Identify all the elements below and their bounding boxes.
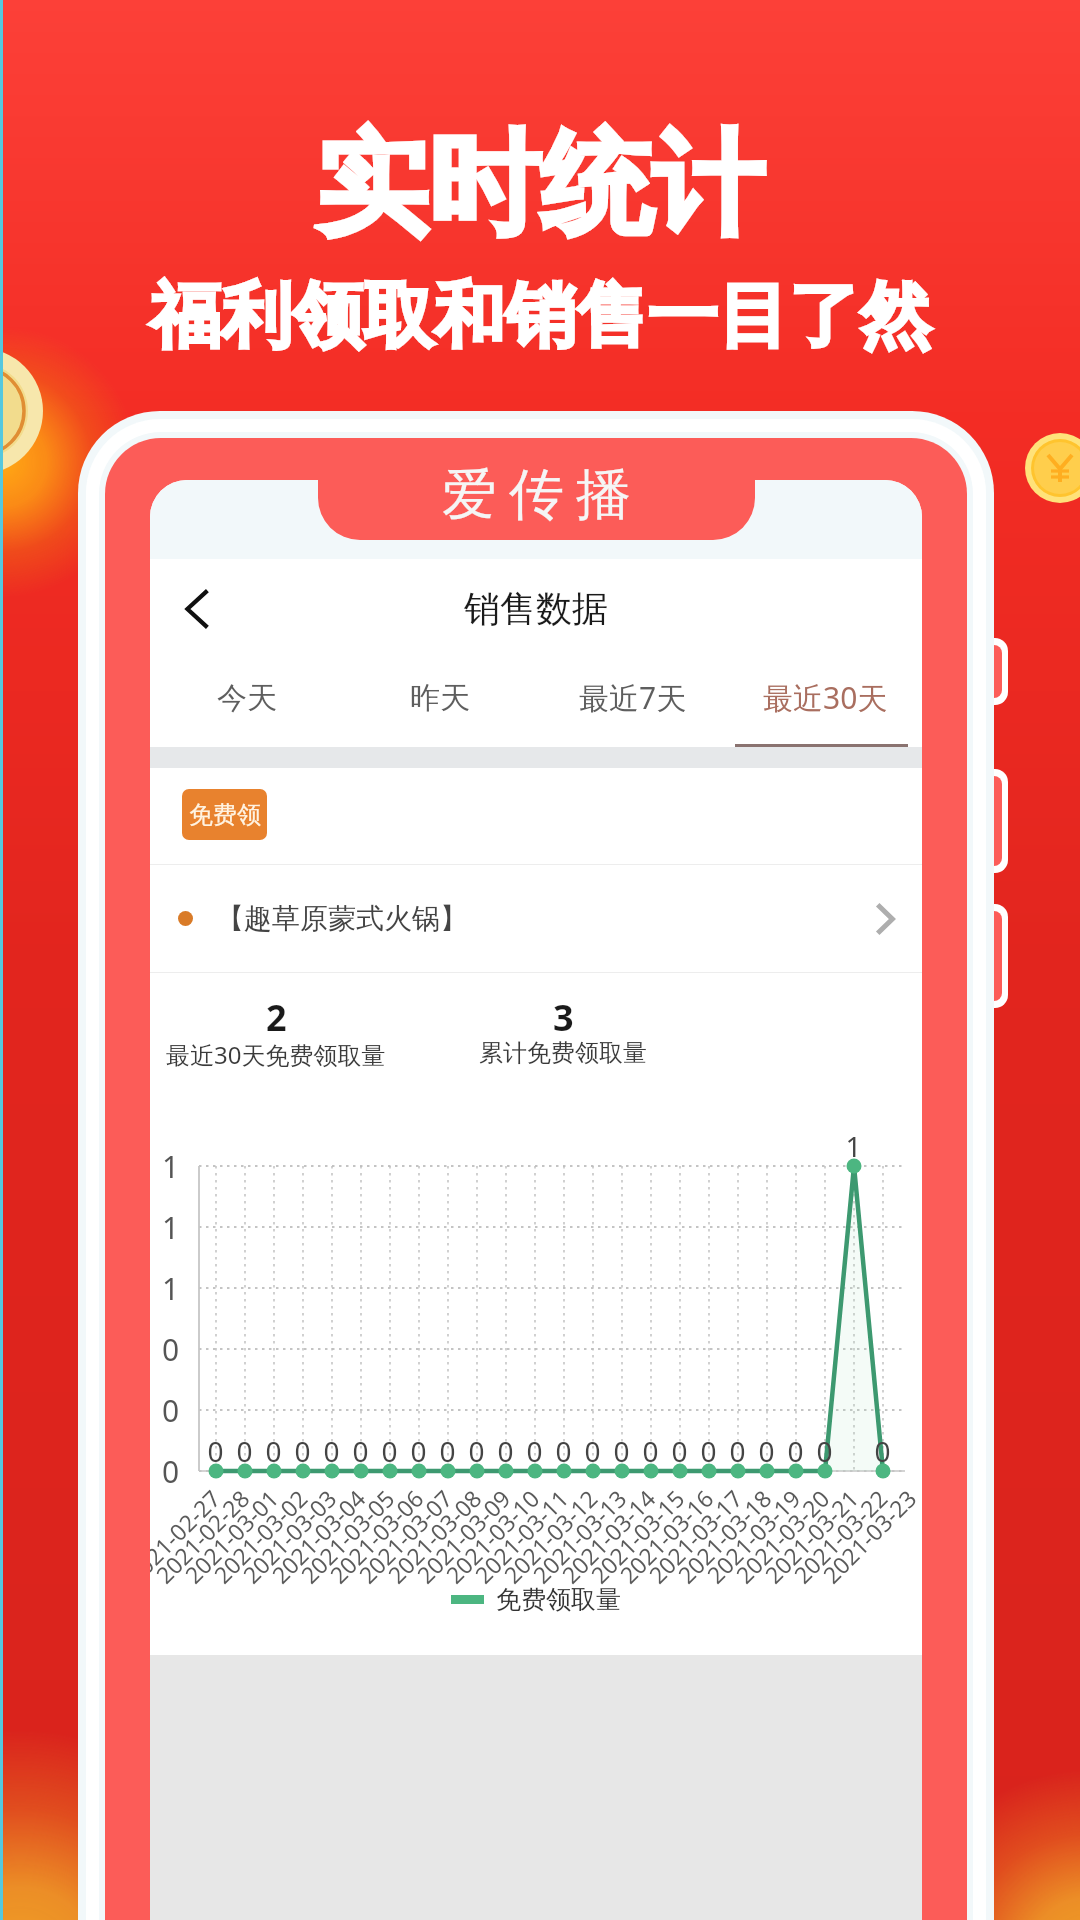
button[interactable]: 【趣草原蒙式火锅】 [150,865,922,972]
button[interactable]: 最近30天 [729,658,922,747]
staticText: 实时统计 [316,115,764,256]
staticText: 【趣草原蒙式火锅】 [216,901,468,936]
staticText: 3 [553,993,574,1042]
staticText: 免费领 [189,800,261,830]
button[interactable]: 最近7天 [536,658,729,747]
staticText: 最近30天免费领取量 [166,1038,386,1071]
button[interactable]: 今天 [150,658,343,747]
staticText: 累计免费领取量 [479,1038,647,1068]
staticText: 福利领取和销售一目了然 [150,272,931,361]
staticText: 今天 [217,679,277,717]
button[interactable]: 昨天 [343,658,536,747]
button[interactable]: 免费领 [182,789,267,840]
staticText: 爱传播 [436,460,637,529]
staticText: 2 [266,993,287,1042]
staticText: 免费领取量 [496,1584,621,1615]
staticText: 销售数据 [464,586,608,631]
staticText: 最近30天 [763,677,888,718]
button[interactable]: 返回 [166,578,228,640]
staticText: 昨天 [410,679,470,717]
button[interactable]: 2 [150,973,436,1099]
button[interactable]: 查看详情 [858,893,910,945]
button[interactable]: 3 [403,973,723,1099]
staticText: 最近7天 [579,677,687,718]
